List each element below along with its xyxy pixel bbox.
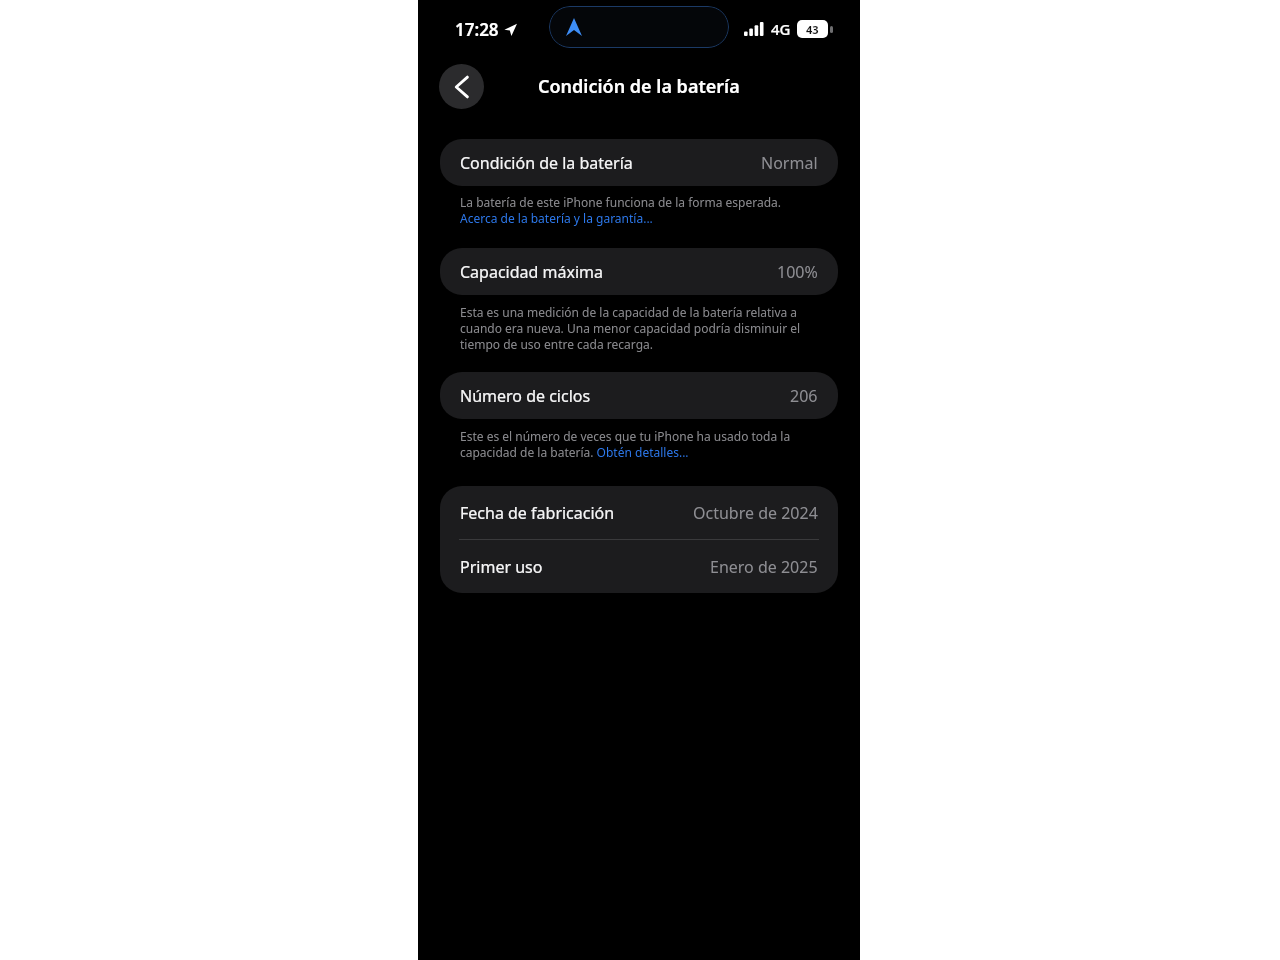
- button[interactable]: Acerca de la batería y la garantía...: [460, 210, 653, 226]
- staticText: Condición de la batería: [460, 152, 633, 174]
- staticText: Normal: [761, 152, 818, 174]
- staticText: Fecha de fabricación: [460, 502, 615, 524]
- button[interactable]: Número de ciclos: [440, 372, 838, 419]
- staticText: 4G: [771, 19, 791, 39]
- staticText: Este es el número de veces que tu iPhone…: [460, 428, 818, 460]
- staticText: Enero de 2025: [710, 556, 818, 578]
- staticText: Número de ciclos: [460, 385, 591, 407]
- button[interactable]: Condición de la batería: [440, 139, 838, 186]
- staticText: La batería de este iPhone funciona de la…: [460, 194, 782, 210]
- staticText: 17:28: [455, 18, 499, 41]
- button[interactable]: Capacidad máxima: [440, 248, 838, 295]
- staticText: Condición de la batería: [538, 74, 740, 99]
- button[interactable]: Primer uso: [440, 540, 838, 593]
- staticText: 43: [806, 22, 819, 37]
- staticText: Octubre de 2024: [693, 502, 818, 524]
- button[interactable]: Atrás: [439, 64, 484, 109]
- staticText: Primer uso: [460, 556, 543, 578]
- staticText: 100%: [777, 261, 818, 283]
- staticText: Capacidad máxima: [460, 261, 603, 283]
- button[interactable]: Fecha de fabricación: [440, 486, 838, 539]
- staticText: Esta es una medición de la capacidad de …: [460, 304, 818, 352]
- staticText: 206: [790, 385, 818, 407]
- button[interactable]: Este es el número de veces que tu iPhone…: [460, 428, 818, 460]
- staticText: Acerca de la batería y la garantía...: [460, 210, 653, 226]
